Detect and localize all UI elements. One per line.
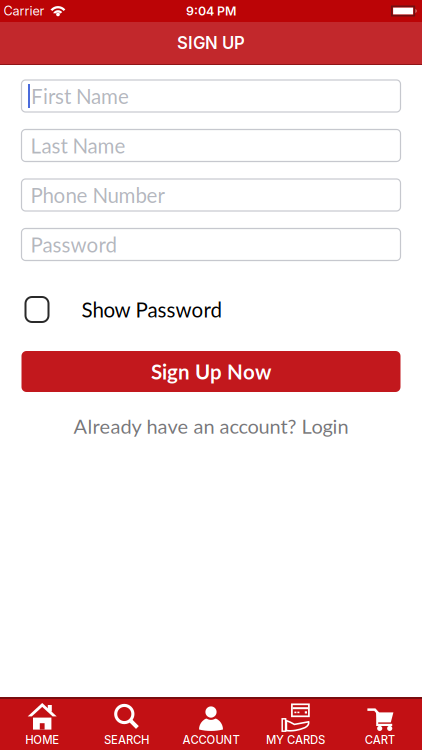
button[interactable]: CART bbox=[338, 702, 422, 747]
staticText: 9:04 PM bbox=[186, 3, 236, 18]
staticText: Password bbox=[30, 232, 116, 257]
button[interactable]: SEARCH bbox=[84, 702, 169, 747]
button[interactable] bbox=[25, 297, 48, 322]
button[interactable]: Sign Up Now bbox=[21, 351, 400, 392]
staticText: Show Password bbox=[81, 297, 221, 322]
staticText: CART bbox=[365, 733, 395, 747]
button[interactable]: MY CARDS bbox=[253, 702, 338, 747]
staticText: Already have an account? Login bbox=[73, 414, 348, 438]
staticText: SEARCH bbox=[104, 733, 149, 747]
staticText: ACCOUNT bbox=[182, 733, 239, 747]
staticText: Carrier bbox=[3, 3, 44, 19]
staticText: Sign Up Now bbox=[151, 359, 271, 384]
staticText: Phone Number bbox=[30, 183, 164, 207]
staticText: HOME bbox=[25, 733, 59, 747]
staticText: Last Name bbox=[30, 133, 125, 158]
button[interactable]: Already have an account? Login bbox=[73, 414, 348, 438]
staticText: First Name bbox=[31, 84, 129, 108]
staticText: MY CARDS bbox=[266, 733, 325, 747]
staticText: SIGN UP bbox=[177, 33, 245, 53]
button[interactable]: ACCOUNT bbox=[169, 702, 253, 747]
button[interactable]: HOME bbox=[0, 702, 84, 747]
